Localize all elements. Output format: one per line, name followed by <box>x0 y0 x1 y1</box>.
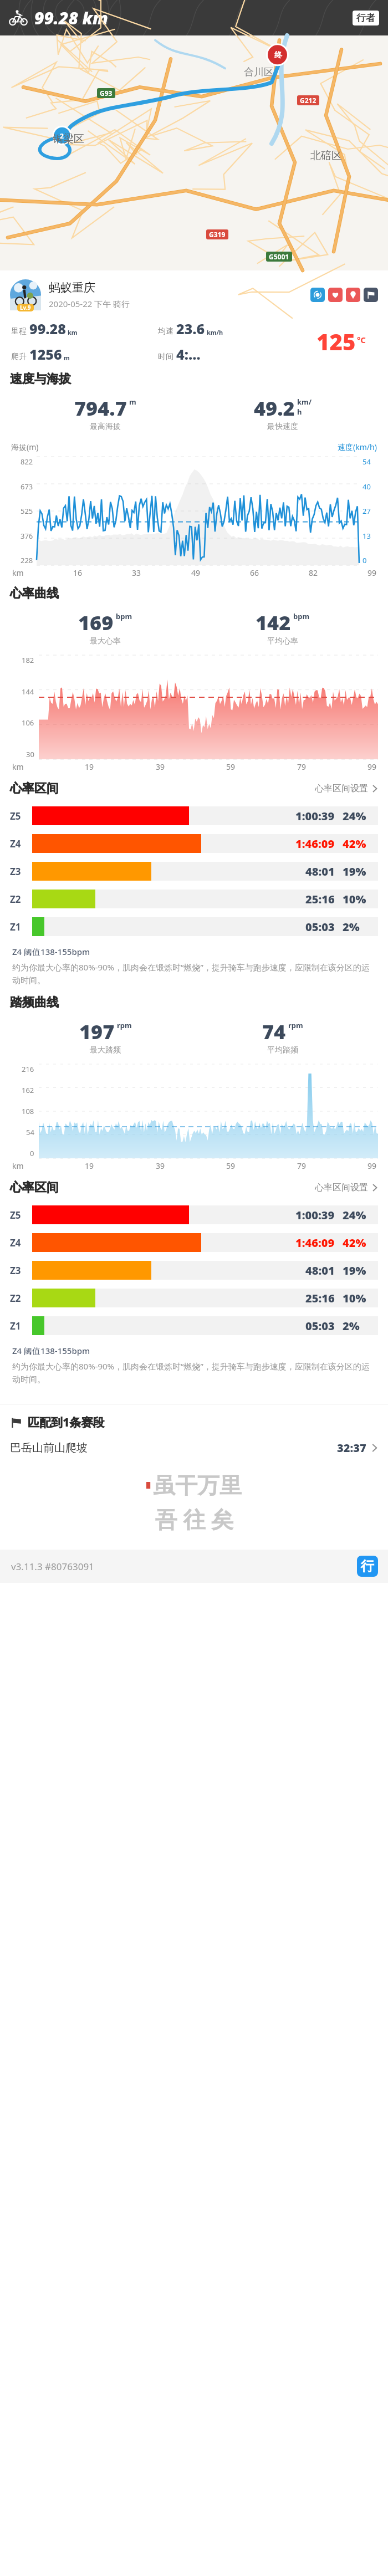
staticText: Z3 <box>10 865 32 878</box>
staticText: 673 <box>21 482 33 492</box>
staticText: 里程 <box>11 326 27 336</box>
staticText: km/h <box>207 328 223 336</box>
staticText: 216 <box>22 1064 34 1074</box>
button[interactable]: Lv.9 <box>10 279 378 310</box>
button[interactable]: 心率区间 <box>10 1180 378 1195</box>
staticText: 42% <box>343 836 372 851</box>
button[interactable]: Route map <box>0 35 388 270</box>
staticText: v3.11.3 #80763091 <box>11 1560 94 1573</box>
staticText: 10% <box>343 892 372 907</box>
staticText: 均速 <box>158 326 173 336</box>
staticText: 25:16 <box>305 1291 335 1306</box>
button[interactable]: Heart rate <box>328 288 343 302</box>
button[interactable]: 心率区间 <box>10 781 378 796</box>
other: Cycling <box>9 8 28 27</box>
staticText: 速度与海拔 <box>10 371 71 387</box>
staticText: 0 <box>363 555 367 565</box>
staticText: 54 <box>363 457 371 467</box>
staticText: Z4 阈值138-155bpm <box>12 1345 90 1356</box>
staticText: G212 <box>300 96 316 105</box>
staticText: 24% <box>343 809 372 824</box>
staticText: rpm <box>117 1020 132 1030</box>
button[interactable]: 行者 <box>353 11 379 25</box>
staticText: 108 <box>22 1106 34 1116</box>
staticText: 16 <box>73 568 83 578</box>
staticText: Z3 <box>10 1264 32 1277</box>
button[interactable]: Z1 <box>10 914 378 939</box>
staticText: 约为你最大心率的80%-90%，肌肉会在锻炼时“燃烧”，提升骑车与跑步速度，应限… <box>12 962 376 986</box>
staticText: 169 <box>78 609 114 636</box>
staticText: 2020-05-22 下午 骑行 <box>49 298 130 309</box>
staticText: m <box>129 397 136 407</box>
staticText: 19% <box>343 864 372 879</box>
button[interactable]: Z3 <box>10 858 378 884</box>
staticText: 144 <box>22 687 34 697</box>
staticText: 约为你最大心率的80%-90%，肌肉会在锻炼时“燃烧”，提升骑车与跑步速度，应限… <box>12 1361 376 1385</box>
other: Segment flag <box>10 1417 22 1429</box>
staticText: 1256 <box>29 345 62 364</box>
staticText: 10% <box>343 1291 372 1306</box>
staticText: 虽干万里 <box>153 1471 242 1499</box>
staticText: 24% <box>343 1208 372 1223</box>
button[interactable]: Z4 <box>10 1230 378 1255</box>
staticText: 匹配到1条赛段 <box>28 1414 105 1430</box>
staticText: 82 <box>309 568 318 578</box>
staticText: 0 <box>30 1148 34 1158</box>
staticText: 速度(km/h) <box>338 442 377 452</box>
staticText: 228 <box>21 555 33 565</box>
button[interactable]: Z2 <box>10 1285 378 1311</box>
button[interactable]: Z5 <box>10 803 378 829</box>
staticText: G93 <box>100 89 113 98</box>
staticText: 79 <box>297 1161 307 1171</box>
button[interactable]: Z1 <box>10 1313 378 1338</box>
staticText: 合川区 <box>244 66 274 79</box>
button[interactable]: Z3 <box>10 1258 378 1283</box>
button[interactable]: Segment flag <box>10 1414 378 1430</box>
staticText: 182 <box>22 655 34 665</box>
button[interactable]: Z4 <box>10 831 378 856</box>
staticText: km <box>12 1161 24 1171</box>
staticText: 66 <box>250 568 259 578</box>
button[interactable]: Segment <box>364 288 378 302</box>
staticText: 794.7 <box>74 395 127 422</box>
staticText: 30 <box>26 749 34 759</box>
staticText: 19 <box>85 1161 94 1171</box>
button[interactable]: 巴岳山前山爬坡 <box>10 1440 378 1455</box>
staticText: 平均踏频 <box>267 1045 298 1055</box>
staticText: 39 <box>156 761 165 772</box>
staticText: 48:01 <box>305 1263 335 1278</box>
button[interactable]: Z5 <box>10 1202 378 1228</box>
staticText: 99 <box>367 1161 377 1171</box>
staticText: 最快速度 <box>267 422 298 432</box>
staticText: 最大踏频 <box>90 1045 121 1055</box>
staticText: 99.28 km <box>34 7 108 29</box>
staticText: 铜梁区 <box>53 132 84 146</box>
staticText: 终 <box>274 50 282 60</box>
staticText: 行 <box>361 1558 374 1575</box>
button[interactable]: Device <box>310 288 325 302</box>
button[interactable]: Location <box>346 288 360 302</box>
staticText: 行者 <box>356 12 375 24</box>
staticText: 巴岳山前山爬坡 <box>10 1441 88 1455</box>
staticText: 19% <box>343 1263 372 1278</box>
staticText: Z5 <box>10 810 32 822</box>
staticText: 吾 往 矣 <box>155 1504 233 1534</box>
button[interactable]: Z2 <box>10 886 378 912</box>
staticText: km <box>68 328 78 336</box>
staticText: 19 <box>85 761 94 772</box>
staticText: 心率区间设置 <box>315 783 368 794</box>
staticText: 59 <box>226 761 236 772</box>
staticText: °C <box>357 334 366 345</box>
staticText: 05:03 <box>305 919 335 934</box>
button[interactable]: App logo <box>357 1556 378 1577</box>
staticText: 525 <box>21 506 33 516</box>
staticText: 1:46:09 <box>295 1235 335 1250</box>
staticText: Lv.9 <box>20 304 31 311</box>
staticText: 74 <box>262 1018 286 1045</box>
staticText: 最高海拔 <box>90 422 121 432</box>
staticText: 142 <box>256 609 291 636</box>
staticText: 23.6 <box>176 319 205 338</box>
staticText: km <box>12 568 24 578</box>
staticText: 2% <box>343 1318 372 1333</box>
staticText: km/ h <box>297 397 312 417</box>
